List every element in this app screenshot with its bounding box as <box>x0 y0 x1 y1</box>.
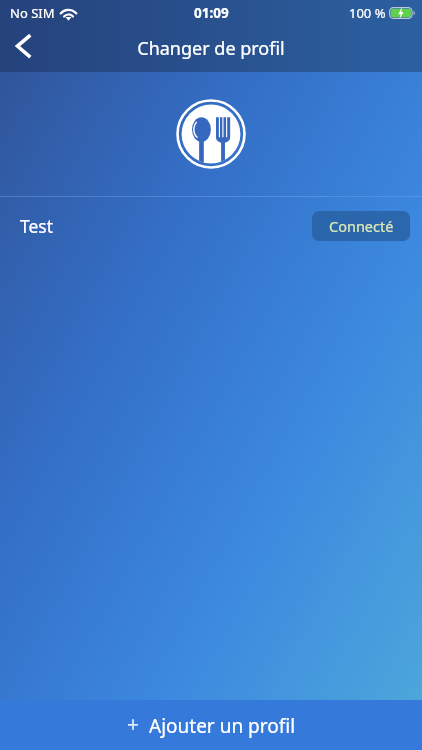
button[interactable]: Connecté <box>312 211 410 241</box>
staticText: Changer de profil <box>137 36 285 61</box>
button[interactable]: + <box>0 700 422 750</box>
staticText: 100 % <box>349 4 386 22</box>
staticText: 01:09 <box>194 4 229 22</box>
staticText: Ajouter un profil <box>149 713 296 739</box>
staticText: No SIM <box>10 4 55 22</box>
button[interactable]: Test <box>0 197 422 256</box>
staticText: Connecté <box>329 216 394 236</box>
staticText: Test <box>20 214 54 238</box>
staticText: + <box>127 710 140 739</box>
button[interactable]: Back <box>0 24 46 70</box>
